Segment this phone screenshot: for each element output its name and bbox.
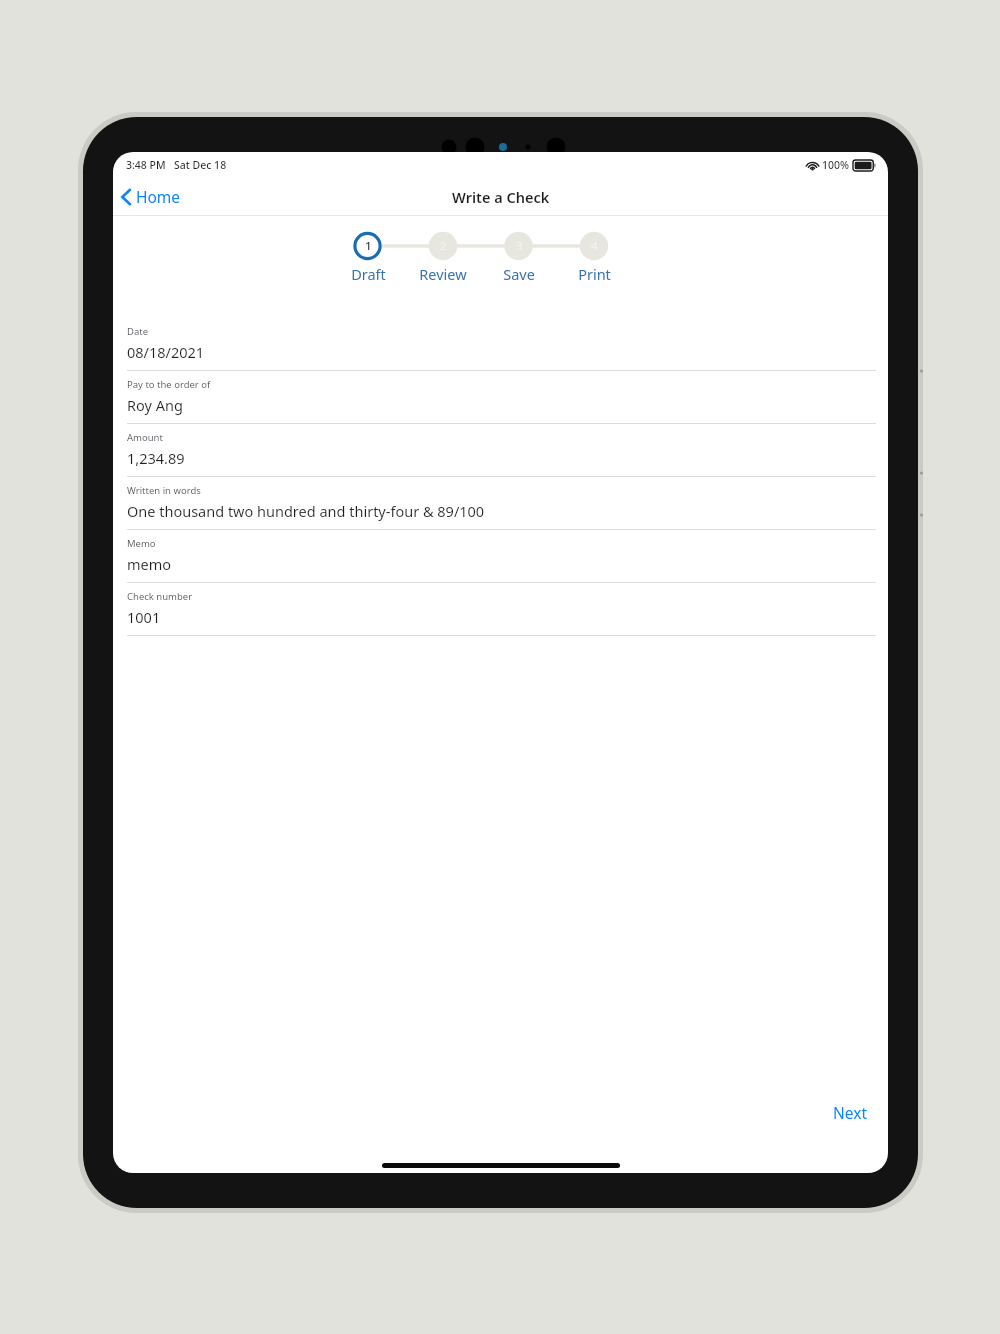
- staticText: 1001: [127, 607, 161, 627]
- button[interactable]: Next: [819, 1094, 882, 1131]
- staticText: 3:48 PM: [126, 158, 166, 172]
- staticText: 3: [516, 238, 523, 254]
- staticText: Check number: [127, 590, 193, 603]
- staticText: Write a Check: [452, 187, 550, 207]
- staticText: Save: [503, 264, 535, 284]
- staticText: 4: [591, 238, 598, 254]
- button[interactable]: Check number: [113, 583, 888, 636]
- button[interactable]: Amount: [113, 424, 888, 477]
- button[interactable]: Date: [113, 318, 888, 371]
- staticText: 1: [365, 238, 372, 254]
- button[interactable]: 3: [505, 230, 533, 262]
- staticText: memo: [127, 554, 172, 574]
- button[interactable]: Pay to the order of: [113, 371, 888, 424]
- staticText: Sat Dec 18: [174, 158, 227, 172]
- staticText: Draft: [351, 264, 386, 284]
- staticText: Written in words: [127, 484, 201, 497]
- staticText: Home: [136, 186, 181, 207]
- staticText: Amount: [127, 431, 163, 444]
- staticText: Date: [127, 325, 149, 338]
- staticText: 1,234.89: [127, 448, 185, 468]
- button[interactable]: 4: [580, 230, 608, 262]
- staticText: 08/18/2021: [127, 342, 205, 362]
- staticText: 100%: [822, 158, 849, 172]
- staticText: Roy Ang: [127, 395, 183, 415]
- button[interactable]: Written in words: [113, 477, 888, 530]
- button[interactable]: Home: [113, 182, 191, 211]
- button[interactable]: 2: [429, 230, 457, 262]
- staticText: Pay to the order of: [127, 378, 211, 391]
- button[interactable]: Memo: [113, 530, 888, 583]
- staticText: Print: [578, 264, 611, 284]
- staticText: 2: [440, 238, 447, 254]
- button[interactable]: 1: [354, 230, 382, 262]
- staticText: One thousand two hundred and thirty-four…: [127, 501, 485, 521]
- staticText: Memo: [127, 537, 156, 550]
- staticText: Next: [833, 1102, 868, 1123]
- staticText: Review: [419, 264, 467, 284]
